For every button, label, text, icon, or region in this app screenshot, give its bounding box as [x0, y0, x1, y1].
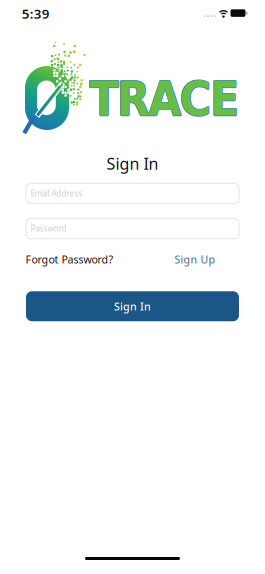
- staticText: TRACE: [89, 71, 239, 127]
- staticText: 5:39: [22, 5, 50, 22]
- staticText: Email Address: [30, 188, 82, 199]
- staticText: Sign In: [114, 299, 151, 313]
- staticText: Password: [30, 223, 66, 234]
- staticText: Sign In: [106, 153, 158, 174]
- button[interactable]: Forgot Password?: [25, 252, 113, 266]
- staticText: Sign Up: [174, 252, 215, 266]
- button[interactable]: Sign Up: [174, 252, 215, 266]
- staticText: Forgot Password?: [25, 252, 113, 266]
- staticText: TRACE: [90, 71, 241, 127]
- staticText: TRACE: [89, 70, 240, 126]
- staticText: TRACE: [89, 72, 240, 128]
- button[interactable]: Sign In: [26, 291, 239, 321]
- staticText: TRACE: [89, 71, 240, 127]
